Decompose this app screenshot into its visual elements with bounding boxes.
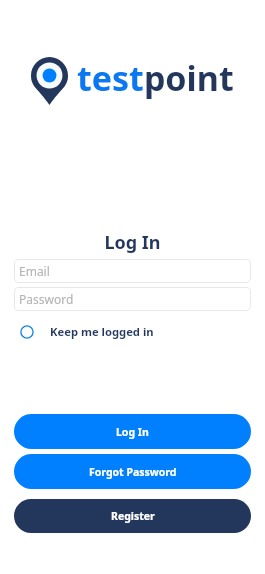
button[interactable]: Register: [14, 499, 251, 533]
staticText: Register: [111, 509, 155, 523]
button[interactable]: Keep me logged in: [14, 319, 251, 343]
staticText: Log In: [14, 230, 251, 255]
button[interactable]: Log In: [14, 414, 251, 449]
staticText: Keep me logged in: [50, 324, 154, 339]
button[interactable]: Forgot Password: [14, 454, 251, 489]
button[interactable]: Password: [14, 287, 251, 311]
staticText: Password: [19, 291, 74, 307]
staticText: Log In: [116, 425, 149, 439]
button[interactable]: Email: [14, 259, 251, 283]
staticText: testpoint: [77, 55, 234, 101]
staticText: Forgot Password: [89, 465, 177, 479]
staticText: Email: [19, 263, 50, 279]
